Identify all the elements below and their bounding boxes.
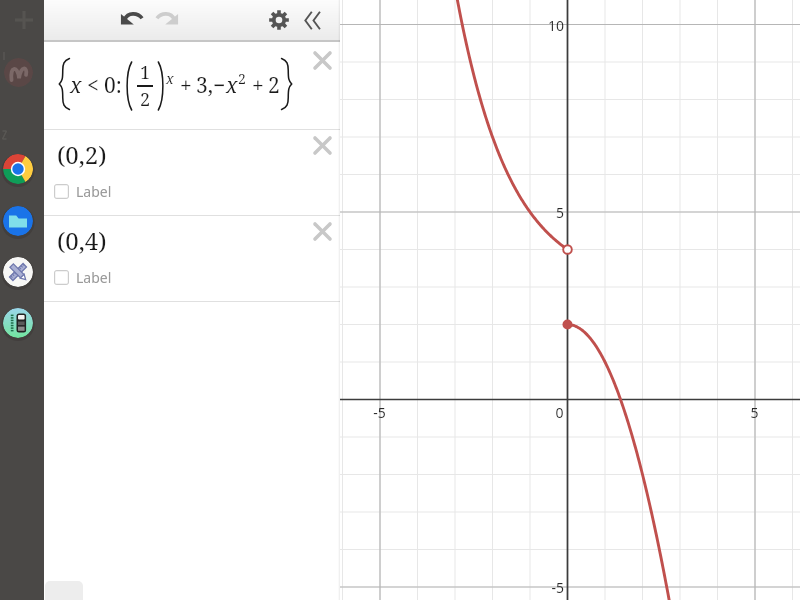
staticText: (0,4) xyxy=(57,224,107,257)
button[interactable]: Redo xyxy=(152,6,182,36)
button[interactable]: Delete xyxy=(313,136,332,155)
staticText: 3, xyxy=(196,71,213,100)
button[interactable]: App xyxy=(4,58,33,87)
button[interactable]: (0,2) xyxy=(44,130,340,215)
button[interactable]: Files xyxy=(3,206,33,236)
button[interactable]: x xyxy=(44,42,340,129)
staticText: 5 xyxy=(750,403,759,422)
staticText: 2 xyxy=(268,71,280,100)
button[interactable]: Delete xyxy=(313,222,332,241)
button[interactable]: Delete xyxy=(313,51,332,70)
staticText: -5 xyxy=(373,403,386,422)
staticText: x xyxy=(70,71,82,100)
staticText: 0 xyxy=(555,403,564,422)
staticText: (0,2) xyxy=(57,138,107,171)
staticText: Label xyxy=(76,268,112,287)
staticText: + xyxy=(180,71,192,100)
staticText: + xyxy=(252,71,264,100)
staticText: x xyxy=(226,71,238,100)
button[interactable]: (0,4) xyxy=(44,216,340,301)
staticText: < xyxy=(87,71,99,100)
button[interactable]: Label xyxy=(54,182,112,201)
staticText: 1 xyxy=(140,60,151,85)
staticText: 2 xyxy=(238,69,246,88)
button[interactable]: Label xyxy=(54,268,112,287)
staticText: -5 xyxy=(551,578,564,596)
button[interactable]: New window xyxy=(10,6,38,34)
staticText: Label xyxy=(76,182,112,201)
staticText: 2 xyxy=(140,87,151,112)
button[interactable]: Undo xyxy=(116,6,146,36)
staticText: − xyxy=(213,71,226,100)
button[interactable]: Drawing app xyxy=(3,257,33,287)
staticText: 5 xyxy=(555,203,564,221)
staticText: x xyxy=(166,69,174,88)
staticText: 10 xyxy=(547,16,564,34)
button[interactable]: Settings xyxy=(264,5,294,35)
staticText: 0: xyxy=(104,71,122,100)
button[interactable]: Collapse xyxy=(298,5,328,35)
button[interactable]: Chrome xyxy=(3,154,33,184)
button[interactable]: Calculator xyxy=(3,308,33,338)
